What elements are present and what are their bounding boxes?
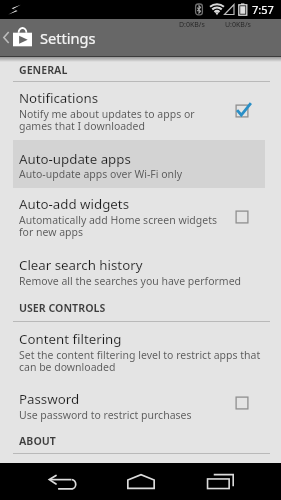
- staticText: Auto-update apps: [19, 150, 131, 168]
- staticText: Remove all the searches you have perform…: [19, 274, 242, 288]
- button[interactable]: Navigate up: [0, 19, 100, 57]
- staticText: Auto-add widgets: [19, 195, 130, 213]
- staticText: Use password to restrict purchases: [19, 408, 192, 422]
- button[interactable]: Notifications: [231, 100, 253, 122]
- staticText: Notify me about updates to apps or: [19, 107, 195, 121]
- staticText: Content filtering: [19, 330, 122, 348]
- button[interactable]: Password: [231, 392, 253, 414]
- button[interactable]: [13, 247, 265, 295]
- staticText: for new apps: [19, 225, 84, 239]
- button[interactable]: Recent apps: [192, 463, 248, 500]
- staticText: Password: [19, 390, 80, 408]
- staticText: Set the content filtering level to restr…: [19, 348, 261, 362]
- button[interactable]: [13, 323, 265, 379]
- button[interactable]: Back: [34, 463, 90, 500]
- staticText: D:0KB/s: [179, 20, 205, 30]
- staticText: U:0KB/s: [225, 20, 251, 30]
- button[interactable]: Home: [113, 463, 169, 500]
- staticText: Notifications: [19, 89, 99, 107]
- staticText: Settings: [40, 28, 96, 48]
- staticText: 7:57: [252, 2, 274, 17]
- button[interactable]: [13, 83, 265, 139]
- staticText: games that I downloaded: [19, 119, 145, 133]
- staticText: Auto-update apps over Wi-Fi only: [19, 167, 183, 181]
- staticText: Automatically add Home screen widgets: [19, 213, 217, 227]
- staticText: GENERAL: [19, 63, 68, 77]
- button[interactable]: Auto-add widgets: [231, 206, 253, 228]
- staticText: ABOUT: [19, 434, 56, 448]
- button[interactable]: [13, 189, 265, 245]
- button[interactable]: [13, 140, 265, 188]
- staticText: can be downloaded: [19, 360, 116, 374]
- staticText: USER CONTROLS: [19, 301, 106, 315]
- button[interactable]: [13, 383, 265, 431]
- staticText: Clear search history: [19, 256, 143, 274]
